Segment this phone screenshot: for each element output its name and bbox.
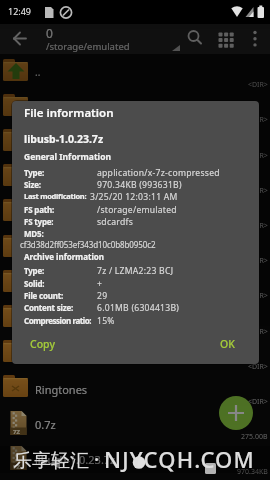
staticText: <DIR>: [248, 80, 268, 90]
staticText: <DIR>: [248, 327, 268, 337]
staticText: 7Z: [13, 463, 20, 471]
button[interactable]: [0, 24, 40, 54]
staticText: +: [97, 278, 103, 290]
staticText: 970.34KB (993631B): [97, 179, 182, 191]
staticText: 0: [46, 25, 53, 41]
staticText: Copy: [30, 337, 55, 351]
staticText: 29: [97, 290, 108, 302]
button[interactable]: [0, 229, 270, 264]
staticText: 970.34KB: [237, 467, 268, 477]
button[interactable]: [0, 124, 270, 159]
staticText: Last modification:: [24, 191, 87, 201]
staticText: 15%: [97, 315, 115, 327]
staticText: ..: [35, 65, 41, 79]
staticText: 275.00B: [241, 432, 268, 442]
staticText: <DIR>: [248, 397, 268, 407]
staticText: FS type:: [24, 216, 54, 227]
button[interactable]: [0, 370, 270, 405]
staticText: <DIR>: [248, 115, 268, 125]
staticText: Type:: [24, 167, 45, 178]
staticText: sdcardfs: [97, 216, 134, 228]
staticText: 7z / LZMA2:23 BCJ: [97, 265, 174, 277]
staticText: <DIR>: [248, 186, 268, 196]
staticText: <DIR>: [248, 291, 268, 301]
staticText: cf3d38d2ff053ef343d10c0b8b0950c2: [20, 239, 156, 250]
staticText: 6.01MB (6304413B): [97, 302, 180, 314]
staticText: libusb-1.0.23.7z: [24, 132, 104, 146]
button[interactable]: [0, 53, 270, 88]
staticText: Content size:: [24, 302, 74, 313]
staticText: Ringtones: [35, 382, 88, 397]
staticText: General Information: [24, 151, 111, 163]
button[interactable]: [0, 88, 270, 123]
button[interactable]: [0, 264, 270, 299]
staticText: OK: [220, 337, 235, 351]
staticText: File information: [24, 105, 114, 121]
staticText: 7Z: [13, 428, 20, 436]
button[interactable]: [0, 335, 270, 370]
staticText: 乐享轻汇 ·: [13, 447, 100, 473]
staticText: application/x-7z-compressed: [97, 167, 220, 179]
staticText: <DIR>: [248, 221, 268, 231]
staticText: FS path:: [24, 204, 55, 215]
button[interactable]: [0, 159, 270, 194]
staticText: 3/25/20 12:03:11 AM: [90, 191, 178, 203]
staticText: 0.7z: [35, 417, 56, 432]
staticText: /storage/emulated: [46, 40, 130, 53]
staticText: NJYCQH.COM: [104, 444, 255, 474]
staticText: /storage/emulated: [97, 204, 177, 216]
staticText: <DIR>: [248, 256, 268, 266]
staticText: <DIR>: [248, 151, 268, 161]
staticText: 12:49: [8, 5, 32, 17]
staticText: <DIR>: [248, 362, 268, 372]
staticText: libusb-1.0.23.7z: [35, 452, 116, 467]
staticText: Type:: [24, 265, 45, 276]
button[interactable]: [219, 396, 253, 430]
button[interactable]: [0, 194, 270, 229]
staticText: Archive information: [24, 251, 105, 262]
staticText: Compression ratio:: [24, 315, 92, 326]
button[interactable]: Copy: [20, 332, 70, 356]
staticText: MD5:: [24, 228, 44, 239]
staticText: Size:: [24, 179, 41, 190]
button[interactable]: [245, 26, 265, 52]
button[interactable]: [0, 300, 270, 335]
staticText: Solid:: [24, 278, 45, 289]
button[interactable]: [213, 26, 237, 52]
button[interactable]: OK: [210, 332, 250, 356]
staticText: File count:: [24, 290, 64, 301]
button[interactable]: [0, 405, 270, 440]
button[interactable]: [183, 26, 205, 52]
